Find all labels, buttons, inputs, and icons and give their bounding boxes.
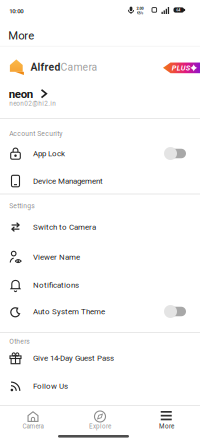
button[interactable]: App Lock (0, 139, 200, 167)
staticText: Switch to Camera (33, 222, 96, 232)
staticText: neon02@hi2.in (9, 100, 56, 107)
staticText: 2.00 (136, 6, 143, 11)
staticText: Alfred (30, 61, 60, 73)
staticText: 64 (176, 8, 180, 12)
button[interactable]: Viewer Name (0, 243, 200, 271)
staticText: PLUS (172, 64, 190, 72)
button[interactable]: More (133, 406, 199, 438)
button[interactable]: Auto System Theme (0, 297, 200, 325)
staticText: Camera (22, 423, 43, 430)
staticText: Account Security (9, 130, 62, 138)
staticText: Settings (9, 202, 34, 210)
staticText: App Lock (33, 149, 65, 158)
button[interactable]: Explore (67, 406, 133, 438)
staticText: KB/s (136, 11, 143, 15)
staticText: Viewer Name (33, 252, 80, 262)
staticText: Auto System Theme (33, 307, 105, 316)
button[interactable]: PLUS (163, 62, 200, 74)
button[interactable]: Notifications (0, 271, 200, 299)
button[interactable]: neon (0, 0, 38, 13)
staticText: Notifications (33, 280, 79, 290)
staticText: 10:00 (9, 8, 23, 15)
button[interactable]: Switch to Camera (0, 213, 200, 241)
staticText: neon (9, 87, 33, 101)
staticText: More (159, 423, 174, 430)
staticText: Device Management (33, 176, 103, 186)
button[interactable]: Device Management (0, 167, 200, 195)
staticText: Give 14-Day Guest Pass (33, 353, 114, 363)
button[interactable]: Follow Us (0, 372, 200, 400)
button[interactable]: Give 14-Day Guest Pass (0, 344, 200, 372)
staticText: Others (9, 338, 29, 345)
staticText: More (8, 29, 34, 42)
staticText: Follow Us (33, 381, 68, 391)
staticText: Camera (60, 61, 97, 73)
button[interactable]: Camera (0, 406, 66, 438)
staticText: Explore (89, 423, 111, 430)
